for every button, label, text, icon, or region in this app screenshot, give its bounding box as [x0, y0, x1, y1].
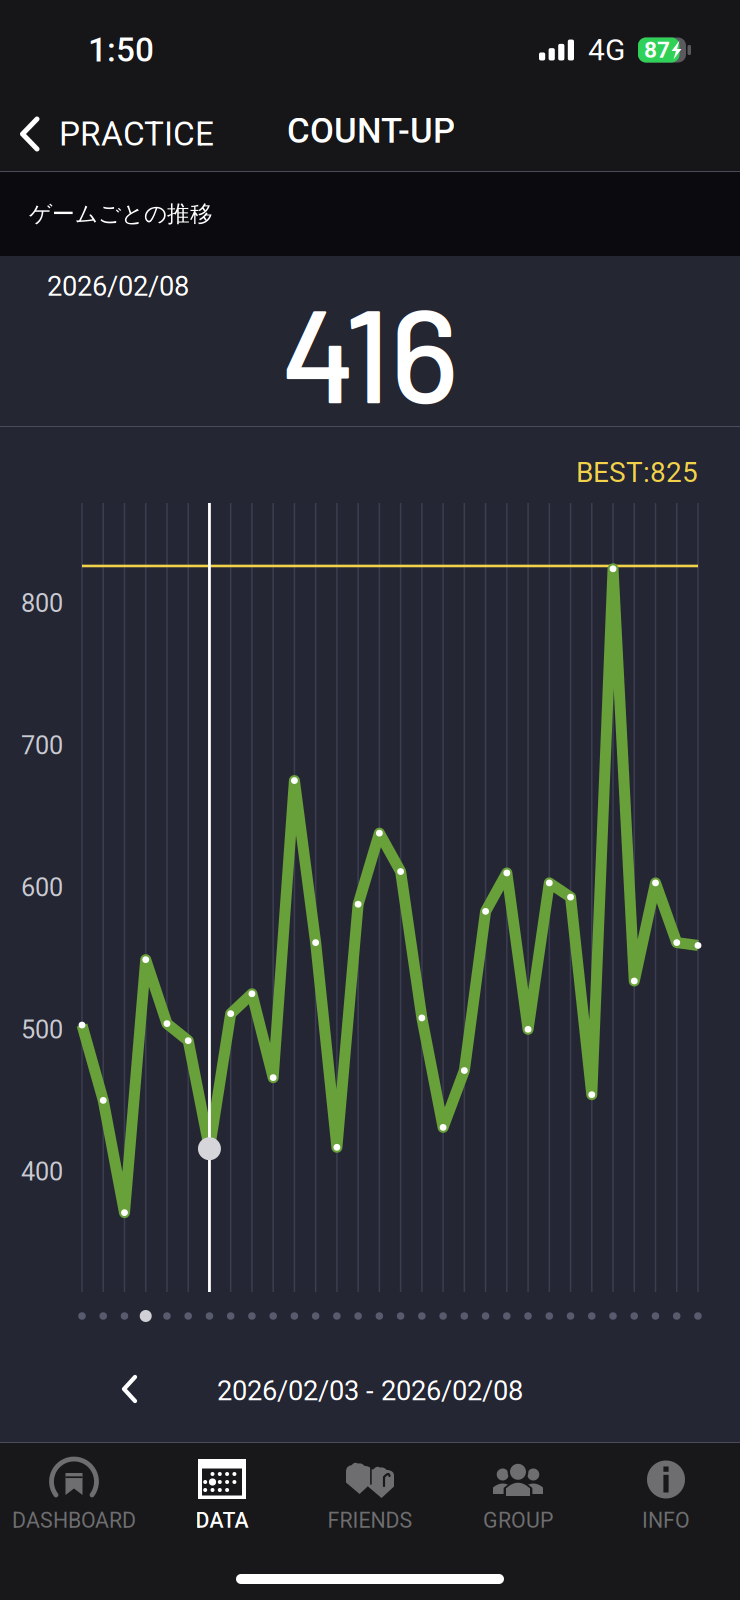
button[interactable]: GROUP: [444, 1442, 592, 1533]
staticText: DASHBOARD: [12, 1508, 136, 1533]
button[interactable]: DASHBOARD: [0, 1442, 148, 1533]
button[interactable]: PRACTICE: [0, 105, 740, 163]
staticText: COUNT-UP: [287, 110, 455, 151]
staticText: 416: [281, 271, 459, 430]
staticText: 2026/02/08: [47, 270, 189, 302]
button[interactable]: INFO: [592, 1442, 740, 1533]
staticText: PRACTICE: [59, 114, 214, 154]
staticText: 4G: [588, 32, 625, 68]
staticText: ゲームごとの推移: [29, 200, 213, 228]
staticText: 600: [21, 873, 63, 902]
staticText: 500: [21, 1015, 63, 1045]
staticText: 87: [644, 37, 670, 63]
staticText: 700: [21, 731, 63, 760]
staticText: 400: [21, 1157, 63, 1187]
staticText: GROUP: [483, 1508, 553, 1533]
staticText: 1:50: [88, 30, 154, 70]
staticText: 800: [21, 588, 63, 618]
staticText: 2026/02/03 - 2026/02/08: [217, 1375, 523, 1407]
staticText: FRIENDS: [327, 1508, 412, 1533]
button[interactable]: FRIENDS: [296, 1442, 444, 1533]
staticText: INFO: [642, 1508, 690, 1533]
staticText: DATA: [195, 1508, 248, 1533]
staticText: BEST:825: [576, 456, 698, 489]
button[interactable]: Previous period: [98, 1353, 161, 1425]
button[interactable]: DATA: [148, 1442, 296, 1533]
